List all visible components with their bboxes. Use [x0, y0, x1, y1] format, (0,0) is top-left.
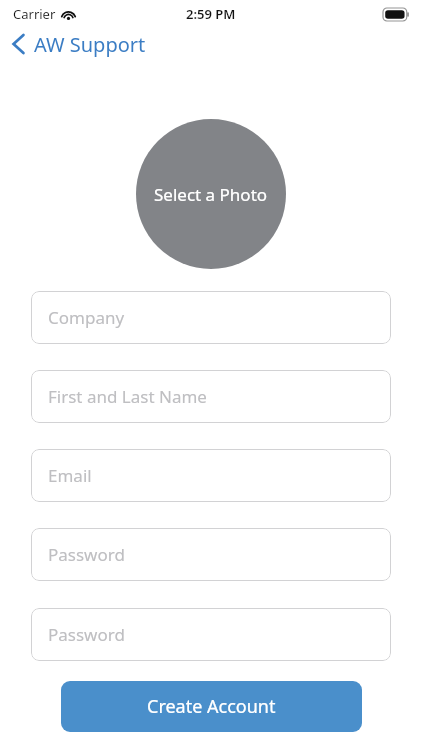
- staticText: 2:59 PM: [186, 5, 236, 23]
- button[interactable]: Select a Photo: [136, 119, 286, 269]
- staticText: Email: [48, 464, 92, 487]
- staticText: Password: [48, 543, 125, 566]
- staticText: Select a Photo: [154, 183, 268, 206]
- staticText: Company: [48, 306, 125, 329]
- button[interactable]: Password: [31, 608, 391, 661]
- staticText: Password: [48, 623, 125, 646]
- button[interactable]: Password: [31, 528, 391, 581]
- button[interactable]: Email: [31, 449, 391, 502]
- staticText: First and Last Name: [48, 385, 207, 408]
- button[interactable]: Company: [31, 291, 391, 344]
- staticText: Carrier: [13, 5, 56, 23]
- button[interactable]: First and Last Name: [31, 370, 391, 423]
- staticText: Create Account: [147, 694, 276, 719]
- button[interactable]: Back to AW Support: [8, 28, 154, 60]
- button[interactable]: Create Account: [61, 681, 362, 732]
- staticText: AW Support: [34, 31, 146, 58]
